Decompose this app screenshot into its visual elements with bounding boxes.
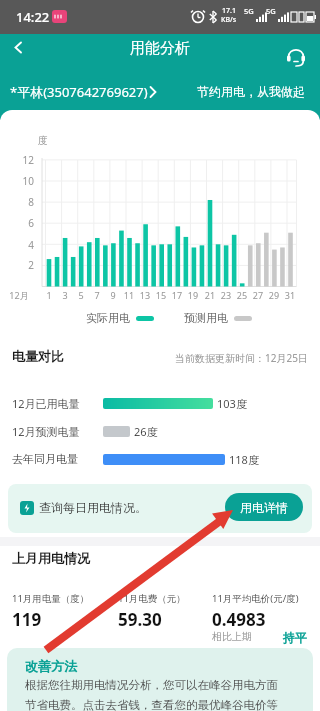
staticText: 去年同月电量 [12,452,78,466]
staticText: 10 [12,174,34,188]
staticText: 实际用电 [86,311,130,325]
staticText: 3 [53,289,77,301]
staticText: 用能分析 [0,39,320,58]
staticText: 0.4983 [212,608,266,631]
staticText: 26度 [134,424,158,439]
staticText: 12月 [4,289,34,301]
staticText: 12 [12,153,34,167]
staticText: 相比上期 [212,630,252,643]
staticText: 11月电费（元） [118,592,186,605]
staticText: 14:22 [16,8,50,26]
staticText: 用电详情 [240,500,288,515]
staticText: 11 [117,289,141,301]
button[interactable]: 用电详情 [225,493,303,521]
staticText: 5G [244,6,254,16]
staticText: 103度 [217,396,247,411]
staticText: 119 [12,608,42,631]
staticText: 19 [181,289,205,301]
staticText: 当前数据更新时间：12月25日 [158,351,308,365]
staticText: 29 [262,289,286,301]
staticText: 27 [246,289,270,301]
staticText: 度 [38,134,48,147]
staticText: 15 [149,289,173,301]
staticText: 上月用电情况 [12,550,90,566]
staticText: 31 [278,289,302,301]
staticText: 改善方法 [25,658,77,674]
button[interactable] [285,45,307,67]
staticText: 持平 [283,630,307,645]
staticText: 13 [133,289,157,301]
staticText: 25 [230,289,254,301]
staticText: 21 [198,289,222,301]
staticText: 12月已用电量 [12,396,80,411]
staticText: 5G [266,6,276,16]
staticText: 5 [69,289,93,301]
staticText: 节省电费。点击去省钱，查看您的最优峰谷电价等 [25,698,278,711]
staticText: *平林(3507642769627) [10,83,148,101]
staticText: 59.30 [118,608,162,631]
staticText: 电量对比 [12,348,64,364]
staticText: 根据您往期用电情况分析，您可以在峰谷用电方面 [25,678,278,692]
button[interactable] [13,41,25,54]
staticText: 11月平均电价(元/度) [212,592,299,605]
staticText: 6 [12,216,34,230]
staticText: 17.1 [222,6,236,16]
staticText: 23 [214,289,238,301]
staticText: 7 [85,289,109,301]
staticText: 8 [12,195,34,209]
button[interactable] [8,484,312,533]
staticText: 118度 [229,452,259,467]
staticText: 9 [101,289,125,301]
staticText: 节约用电，从我做起 [197,84,305,99]
staticText: 查询每日用电情况。 [39,500,147,515]
staticText: 17 [165,289,189,301]
staticText: 12月预测电量 [12,424,80,439]
staticText: 1 [37,289,61,301]
staticText: 11月用电量（度） [12,592,90,605]
staticText: 预测用电 [184,311,228,325]
staticText: KB/s [221,15,237,25]
staticText: 2 [12,258,34,272]
button[interactable]: *平林(3507642769627) [10,82,148,102]
staticText: 4 [12,238,34,252]
